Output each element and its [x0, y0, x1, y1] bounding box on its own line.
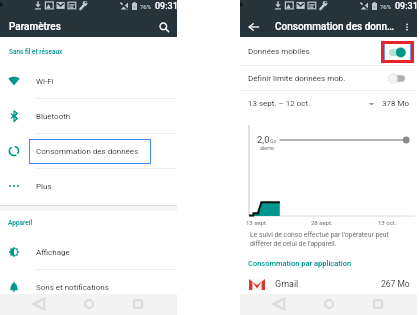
button[interactable]: Définir limite données mob.	[240, 66, 417, 91]
button[interactable]: 13 sept. – 12 oct.	[240, 91, 417, 116]
button[interactable]: Wi-Fi	[0, 64, 177, 99]
staticText: Appareil	[8, 219, 33, 227]
staticText: 2,0	[257, 134, 270, 145]
button[interactable]: Gmail	[240, 275, 417, 293]
button[interactable]: Données mobiles	[240, 37, 417, 66]
button[interactable]: Affichage	[0, 235, 177, 270]
button[interactable]: Home	[323, 298, 335, 310]
staticText: Définir limite données mob.	[248, 74, 346, 83]
button[interactable]: Plus	[0, 169, 177, 203]
staticText: alerte	[260, 145, 274, 151]
button[interactable]: Back	[248, 21, 260, 33]
staticText: 76%	[380, 3, 392, 10]
staticText: Consommation des donn…	[275, 21, 395, 33]
staticText: 378 Mo	[382, 99, 410, 108]
staticText: 09:31	[155, 1, 178, 12]
button[interactable]: Home	[83, 298, 95, 310]
button[interactable]: Consommation par application	[248, 259, 352, 268]
staticText: 76%	[140, 3, 152, 10]
staticText: 267 Mo	[381, 279, 410, 289]
button[interactable]: Bluetooth	[0, 99, 177, 134]
staticText: Gmail	[275, 279, 299, 290]
staticText: Sons et notifications	[36, 283, 109, 292]
staticText: 09:31	[395, 1, 418, 12]
button[interactable]: Recent apps	[132, 298, 144, 310]
staticText: Bluetooth	[36, 112, 71, 121]
button[interactable]: Back	[33, 298, 45, 310]
button[interactable]: Back	[273, 298, 285, 310]
button[interactable]: More options	[401, 21, 413, 33]
staticText: Plus	[36, 182, 52, 191]
staticText: 13 sept.	[246, 219, 268, 226]
staticText: Sans fil et réseaux	[9, 48, 63, 56]
staticText: Données mobiles	[248, 47, 310, 56]
staticText: Go	[270, 138, 277, 144]
staticText: 28 sept.	[311, 219, 333, 226]
button[interactable]: Consommation des données	[0, 134, 177, 169]
staticText: Wi-Fi	[36, 77, 54, 86]
staticText: Paramètres	[9, 21, 61, 33]
staticText: 13 oct.	[378, 219, 397, 226]
button[interactable]: Search	[157, 20, 171, 34]
staticText: Le suivi de conso effectué par l'opérate…	[250, 231, 389, 248]
staticText: Affichage	[36, 248, 70, 257]
button[interactable]: Recent apps	[372, 298, 384, 310]
staticText: 13 sept. – 12 oct.	[248, 99, 311, 108]
staticText: Consommation des données	[36, 147, 139, 156]
button[interactable]: Sons et notifications	[0, 270, 177, 304]
